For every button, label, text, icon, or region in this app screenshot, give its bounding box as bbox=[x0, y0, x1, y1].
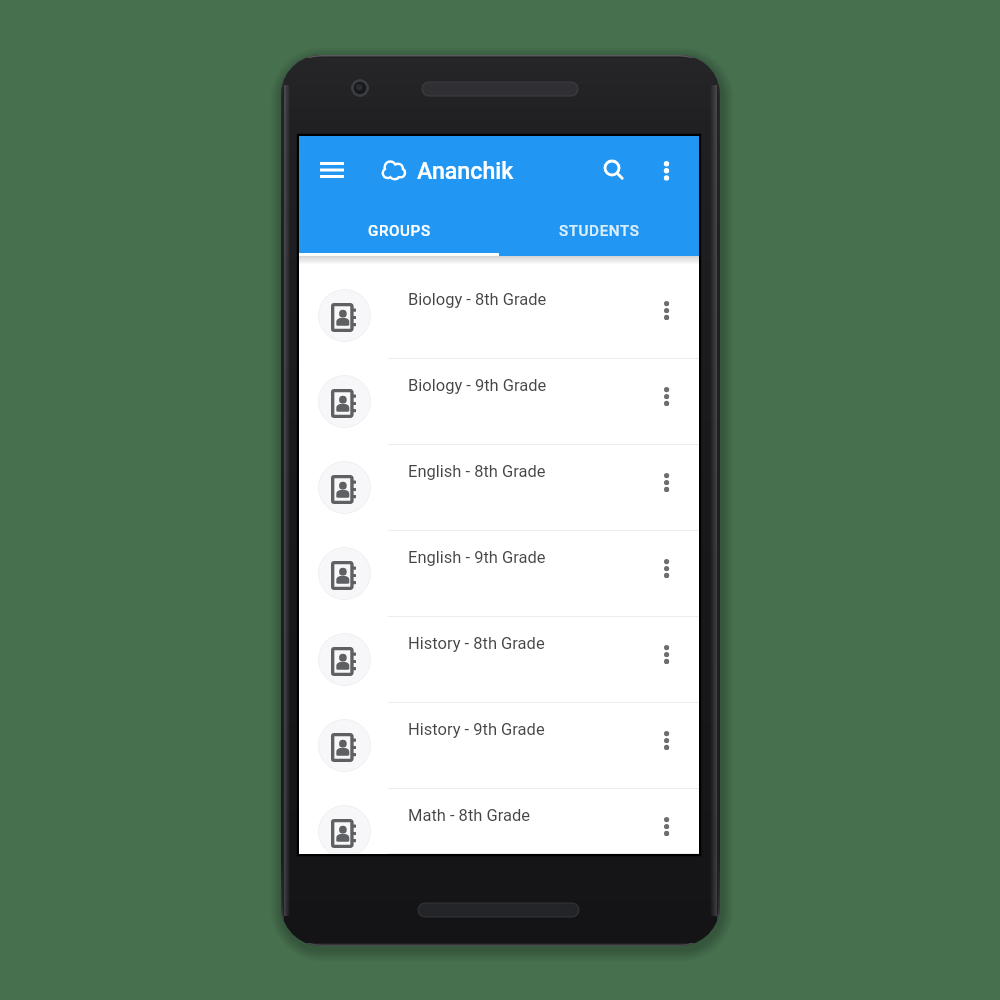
staticText: English - 9th Grade bbox=[408, 548, 546, 567]
staticText: History - 8th Grade bbox=[408, 634, 545, 653]
button[interactable]: More options for English - 9th Grade bbox=[644, 546, 688, 590]
button[interactable]: Math - 8th Grade bbox=[299, 789, 699, 854]
staticText: Ananchik bbox=[417, 157, 514, 184]
button[interactable]: English - 8th Grade bbox=[299, 445, 699, 531]
button[interactable]: History - 9th Grade bbox=[299, 703, 699, 789]
button[interactable]: More options for Math - 8th Grade bbox=[644, 804, 688, 848]
staticText: English - 8th Grade bbox=[408, 462, 546, 481]
button[interactable]: More options for History - 8th Grade bbox=[644, 632, 688, 676]
button[interactable]: More options bbox=[642, 146, 690, 194]
staticText: STUDENTS bbox=[559, 222, 640, 240]
button[interactable]: STUDENTS bbox=[499, 206, 699, 256]
staticText: Biology - 8th Grade bbox=[408, 290, 547, 309]
button[interactable]: English - 9th Grade bbox=[299, 531, 699, 617]
button[interactable]: More options for Biology - 9th Grade bbox=[644, 374, 688, 418]
button[interactable]: History - 8th Grade bbox=[299, 617, 699, 703]
staticText: GROUPS bbox=[368, 222, 431, 240]
button[interactable]: Open navigation menu bbox=[308, 146, 356, 194]
button[interactable]: Search bbox=[590, 146, 638, 194]
button[interactable]: Biology - 9th Grade bbox=[299, 359, 699, 445]
button[interactable]: More options for Biology - 8th Grade bbox=[644, 288, 688, 332]
staticText: History - 9th Grade bbox=[408, 720, 545, 739]
button[interactable]: GROUPS bbox=[299, 206, 499, 256]
staticText: Math - 8th Grade bbox=[408, 806, 531, 825]
button[interactable]: Biology - 8th Grade bbox=[299, 273, 699, 359]
button[interactable]: More options for History - 9th Grade bbox=[644, 718, 688, 762]
staticText: Biology - 9th Grade bbox=[408, 376, 547, 395]
button[interactable]: More options for English - 8th Grade bbox=[644, 460, 688, 504]
